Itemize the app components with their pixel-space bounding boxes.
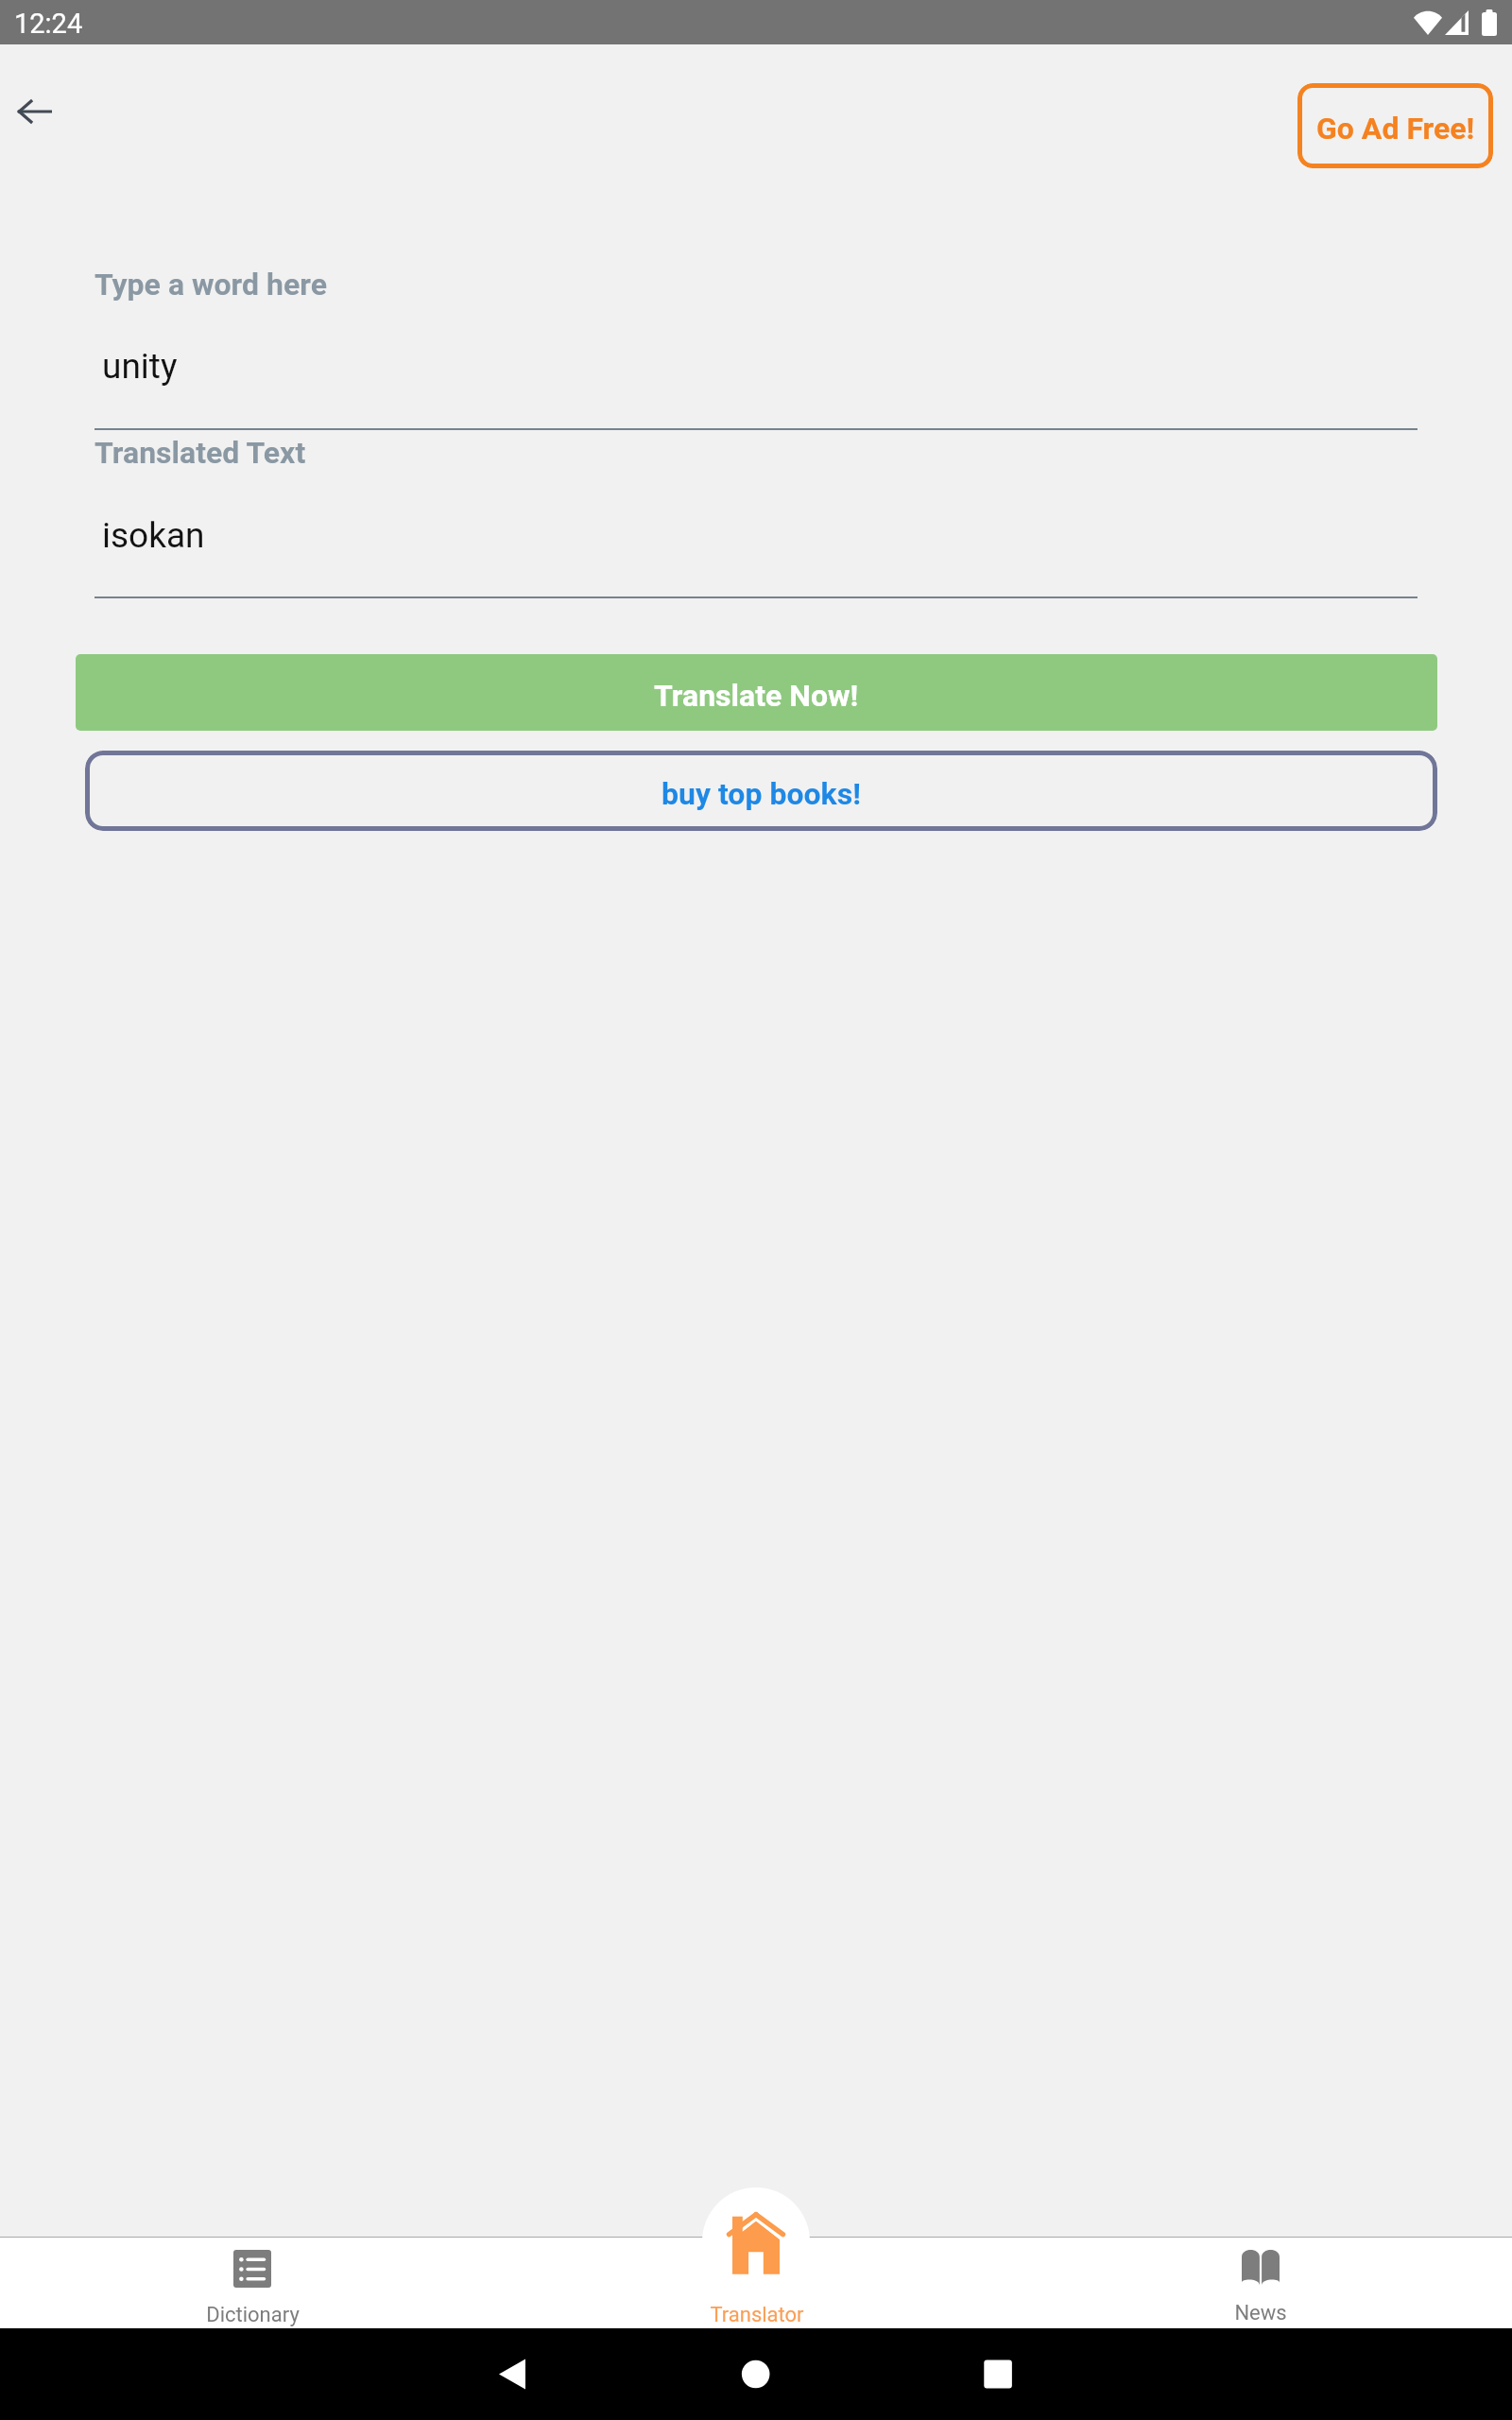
staticText: Dictionary bbox=[206, 2303, 300, 2327]
button[interactable]: Dictionary bbox=[0, 2238, 505, 2328]
staticText: Translator bbox=[710, 2303, 804, 2327]
staticText: isokan bbox=[102, 515, 205, 556]
button[interactable]: Translate Now! bbox=[76, 654, 1437, 731]
button[interactable]: News bbox=[1008, 2238, 1512, 2328]
staticText: unity bbox=[102, 346, 178, 387]
button[interactable]: Go Ad Free! bbox=[1297, 83, 1493, 168]
staticText: News bbox=[1234, 2301, 1287, 2325]
staticText: Go Ad Free! bbox=[1316, 111, 1475, 147]
staticText: buy top books! bbox=[661, 776, 861, 812]
button[interactable]: Translator bbox=[702, 2187, 810, 2295]
staticText: 12:24 bbox=[14, 8, 83, 40]
button[interactable]: Translator bbox=[505, 2238, 1008, 2328]
staticText: Translate Now! bbox=[654, 678, 859, 714]
button[interactable]: Back bbox=[0, 78, 68, 145]
button[interactable]: buy top books! bbox=[85, 751, 1437, 831]
staticText: Translated Text bbox=[94, 435, 306, 471]
staticText: Type a word here bbox=[94, 267, 327, 302]
